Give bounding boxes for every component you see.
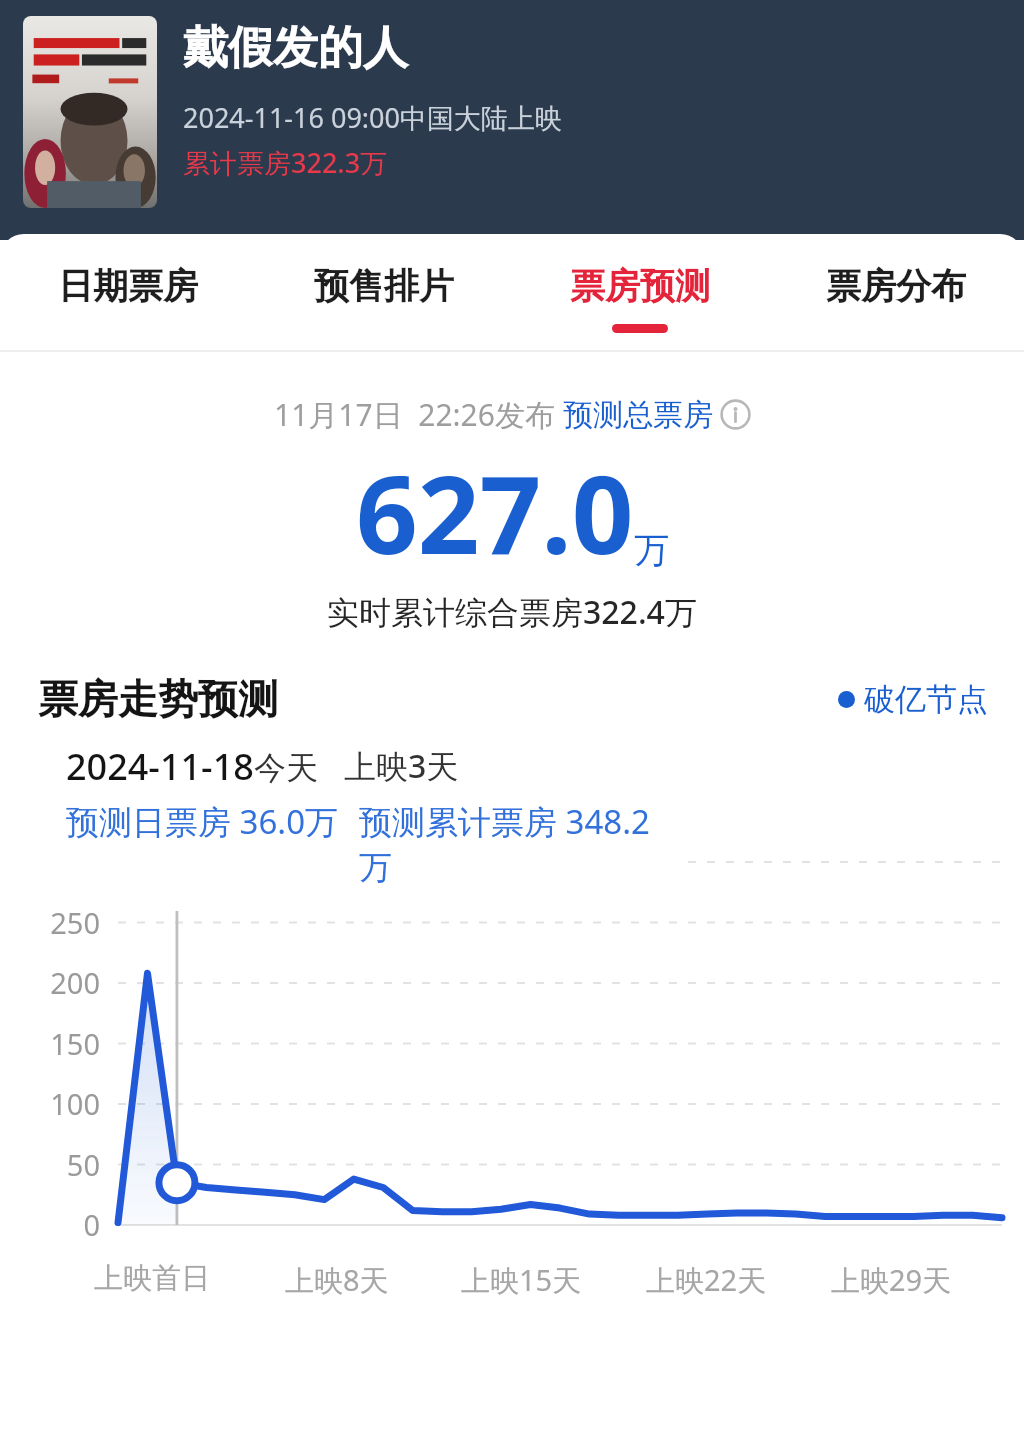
- staticText: 戴假发的人: [183, 20, 408, 77]
- staticText: 上映22天: [646, 1260, 767, 1300]
- staticText: 预测累计票房 348.2万: [359, 799, 664, 889]
- staticText: 上映8天: [285, 1260, 389, 1300]
- staticText: 破亿节点: [864, 680, 988, 719]
- staticText: 250: [0, 903, 100, 942]
- staticText: 50: [0, 1145, 100, 1184]
- button[interactable]: 11月17日 22:26发布: [274, 394, 751, 435]
- staticText: 上映3天: [344, 744, 459, 788]
- button[interactable]: 2024-11-18: [38, 724, 682, 911]
- staticText: 票房分布: [826, 264, 966, 308]
- button[interactable]: 票房分布: [768, 234, 1024, 352]
- staticText: 预测总票房: [563, 396, 713, 434]
- button[interactable]: [23, 16, 157, 208]
- staticText: 上映15天: [461, 1260, 582, 1300]
- staticText: 2024-11-16 09:00中国大陆上映: [183, 99, 562, 136]
- staticText: 万: [634, 528, 669, 572]
- staticText: 今天: [254, 748, 318, 788]
- staticText: 日期票房: [58, 264, 198, 308]
- staticText: 2024-11-18: [66, 742, 254, 791]
- staticText: 预测日票房 36.0万: [66, 799, 339, 844]
- button[interactable]: 票房预测: [512, 234, 768, 352]
- staticText: 上映首日: [94, 1260, 210, 1297]
- staticText: 预售排片: [314, 264, 454, 308]
- staticText: 150: [0, 1024, 100, 1063]
- button[interactable]: 破亿节点: [838, 680, 988, 719]
- staticText: 0: [0, 1205, 100, 1244]
- staticText: 11月17日 22:26发布: [274, 394, 563, 435]
- staticText: 票房预测: [570, 264, 710, 308]
- staticText: 实时累计综合票房322.4万: [327, 590, 697, 634]
- button[interactable]: 日期票房: [0, 234, 256, 352]
- staticText: 上映29天: [831, 1260, 952, 1300]
- staticText: 累计票房322.3万: [183, 144, 388, 181]
- button[interactable]: 预售排片: [256, 234, 512, 352]
- other: 预测总票房说明: [720, 399, 751, 430]
- staticText: 100: [0, 1084, 100, 1123]
- staticText: 200: [0, 963, 100, 1002]
- staticText: 627.0: [356, 439, 634, 586]
- staticText: 票房走势预测: [38, 674, 278, 724]
